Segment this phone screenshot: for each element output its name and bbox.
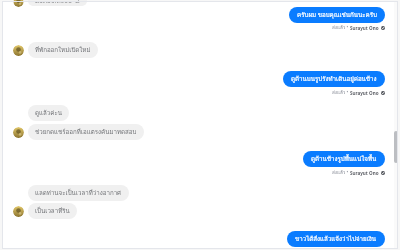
button[interactable]: เป็นเวลาที่ริน	[28, 203, 77, 219]
staticText: Surayut Ono	[350, 25, 379, 31]
button[interactable]: ครับผม ขอบคุณเช่นกันนะครับ	[289, 7, 385, 23]
staticText: Surayut Ono	[350, 170, 379, 176]
button[interactable]: Scroll	[394, 131, 398, 163]
staticText: ส่งแล้ว •	[332, 169, 350, 176]
button[interactable]: แลดท่านจะเป็นเวลาที่ว่างอากาศ	[28, 185, 129, 201]
button[interactable]: ช่วยกดแชร์ออกที่เอแตรงคันมาทดสอบ	[28, 124, 144, 140]
staticText: ดูด้านข้างรูปพื้นแน่ใจพื้น	[311, 154, 377, 164]
button[interactable]: ขอบคุณมากค่ะพี่	[28, 0, 87, 6]
button[interactable]: ที่พักออกใหม่เปิดใหม่	[28, 42, 98, 58]
staticText: ส่งแล้ว •	[332, 89, 350, 96]
staticText: ขอบคุณมากค่ะพี่	[35, 0, 80, 3]
button[interactable]: ดูด้านข้างรูปพื้นแน่ใจพื้น	[303, 151, 385, 167]
button[interactable]: ขาวได้สั่งแล้วแจ้งว่าไปจ่ายเงิน	[287, 231, 385, 247]
staticText: ครับผม ขอบคุณเช่นกันนะครับ	[297, 10, 377, 20]
staticText: ช่วยกดแชร์ออกที่เอแตรงคันมาทดสอบ	[35, 127, 137, 137]
staticText: เป็นเวลาที่ริน	[35, 206, 70, 216]
staticText: ดูแล้วค่ะน	[35, 108, 62, 118]
staticText: แลดท่านจะเป็นเวลาที่ว่างอากาศ	[35, 188, 122, 198]
staticText: ส่งแล้ว •	[332, 24, 350, 31]
staticText: Surayut Ono	[350, 90, 379, 96]
button[interactable]: ดูแล้วค่ะน	[28, 105, 69, 121]
staticText: ที่พักออกใหม่เปิดใหม่	[35, 45, 91, 55]
staticText: ดูด้านบนรูปรังทำเดินอยู่ค่อนข้าง	[291, 74, 377, 84]
button[interactable]: ดูด้านบนรูปรังทำเดินอยู่ค่อนข้าง	[283, 71, 385, 87]
staticText: ขาวได้สั่งแล้วแจ้งว่าไปจ่ายเงิน	[295, 234, 377, 244]
